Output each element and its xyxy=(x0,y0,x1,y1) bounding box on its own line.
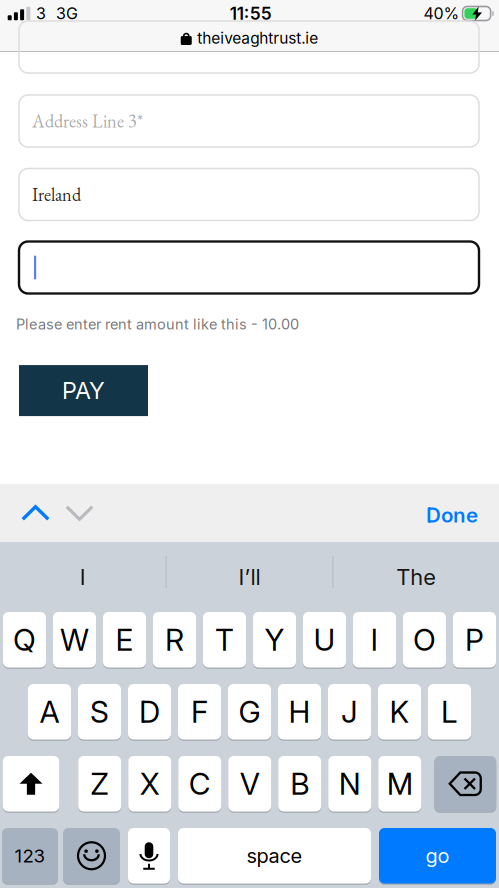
staticText: 3G xyxy=(56,4,78,23)
button[interactable]: M xyxy=(378,756,421,811)
staticText: Q xyxy=(13,622,36,658)
staticText: A xyxy=(39,694,59,730)
staticText: F xyxy=(191,694,208,730)
staticText: E xyxy=(115,622,133,658)
button[interactable]: Previous field xyxy=(0,484,71,542)
button[interactable]: Dictate xyxy=(128,828,170,883)
staticText: V xyxy=(240,766,260,802)
staticText: M xyxy=(387,766,413,802)
button[interactable]: P xyxy=(453,612,496,667)
staticText: O xyxy=(413,622,436,658)
button[interactable]: space xyxy=(178,828,371,883)
staticText: L xyxy=(441,694,458,730)
button[interactable]: I xyxy=(353,612,396,667)
button[interactable]: N xyxy=(328,756,371,811)
button[interactable]: D xyxy=(128,684,171,739)
staticText: X xyxy=(140,766,160,802)
button[interactable]: Delete xyxy=(434,756,496,811)
staticText: C xyxy=(189,766,211,802)
staticText: Y xyxy=(264,622,284,658)
staticText: H xyxy=(288,694,310,730)
button[interactable]: Next field xyxy=(71,484,88,542)
staticText: The xyxy=(396,564,436,590)
button[interactable]: G xyxy=(228,684,271,739)
staticText: K xyxy=(389,694,409,730)
button[interactable]: X xyxy=(128,756,171,811)
button[interactable]: T xyxy=(203,612,246,667)
staticText: J xyxy=(341,694,358,730)
staticText: D xyxy=(139,694,160,730)
staticText: Please enter rent amount like this - 10.… xyxy=(16,315,299,333)
button[interactable]: PAY xyxy=(19,365,148,416)
button[interactable]: B xyxy=(278,756,321,811)
button[interactable]: J xyxy=(328,684,371,739)
staticText: Ireland xyxy=(32,183,81,206)
button[interactable]: O xyxy=(403,612,446,667)
staticText: I xyxy=(370,622,378,658)
staticText: 40% xyxy=(424,4,460,23)
button[interactable]: S xyxy=(78,684,121,739)
button[interactable]: go xyxy=(379,828,496,883)
button[interactable]: W xyxy=(53,612,96,667)
staticText: 11:55 xyxy=(230,3,272,24)
staticText: S xyxy=(90,694,109,730)
button[interactable]: I xyxy=(0,542,165,612)
staticText: U xyxy=(313,622,335,658)
staticText: P xyxy=(465,622,484,658)
staticText: I xyxy=(80,564,86,590)
staticText: space xyxy=(246,844,302,868)
staticText: PAY xyxy=(62,376,105,405)
staticText: I’ll xyxy=(238,564,260,590)
button[interactable]: V xyxy=(228,756,271,811)
staticText: Z xyxy=(90,766,109,802)
staticText: G xyxy=(238,694,260,730)
button[interactable]: E xyxy=(103,612,146,667)
button[interactable]: Q xyxy=(3,612,46,667)
button[interactable]: H xyxy=(278,684,321,739)
staticText: R xyxy=(165,622,184,658)
staticText: T xyxy=(215,622,234,658)
button[interactable]: The xyxy=(333,542,499,612)
staticText: Done xyxy=(426,503,478,527)
button[interactable]: K xyxy=(378,684,421,739)
button[interactable]: Z xyxy=(78,756,121,811)
button[interactable]: A xyxy=(28,684,71,739)
button[interactable]: 123 xyxy=(2,828,58,883)
staticText: N xyxy=(339,766,361,802)
staticText: 3 xyxy=(36,4,46,23)
button[interactable]: R xyxy=(153,612,196,667)
staticText: 123 xyxy=(14,844,45,867)
staticText: W xyxy=(60,622,89,658)
button[interactable]: Y xyxy=(253,612,296,667)
staticText: theiveaghtrust.ie xyxy=(197,29,318,47)
button[interactable]: U xyxy=(303,612,346,667)
button[interactable]: F xyxy=(178,684,221,739)
button[interactable]: L xyxy=(428,684,471,739)
button[interactable]: C xyxy=(178,756,221,811)
button[interactable]: Done xyxy=(426,484,499,542)
staticText: go xyxy=(425,844,449,868)
button[interactable]: Shift xyxy=(3,756,59,811)
button[interactable]: Emoji xyxy=(63,828,120,883)
button[interactable]: I’ll xyxy=(167,542,332,612)
staticText: B xyxy=(290,766,309,802)
staticText: Address Line 3* xyxy=(32,109,143,133)
